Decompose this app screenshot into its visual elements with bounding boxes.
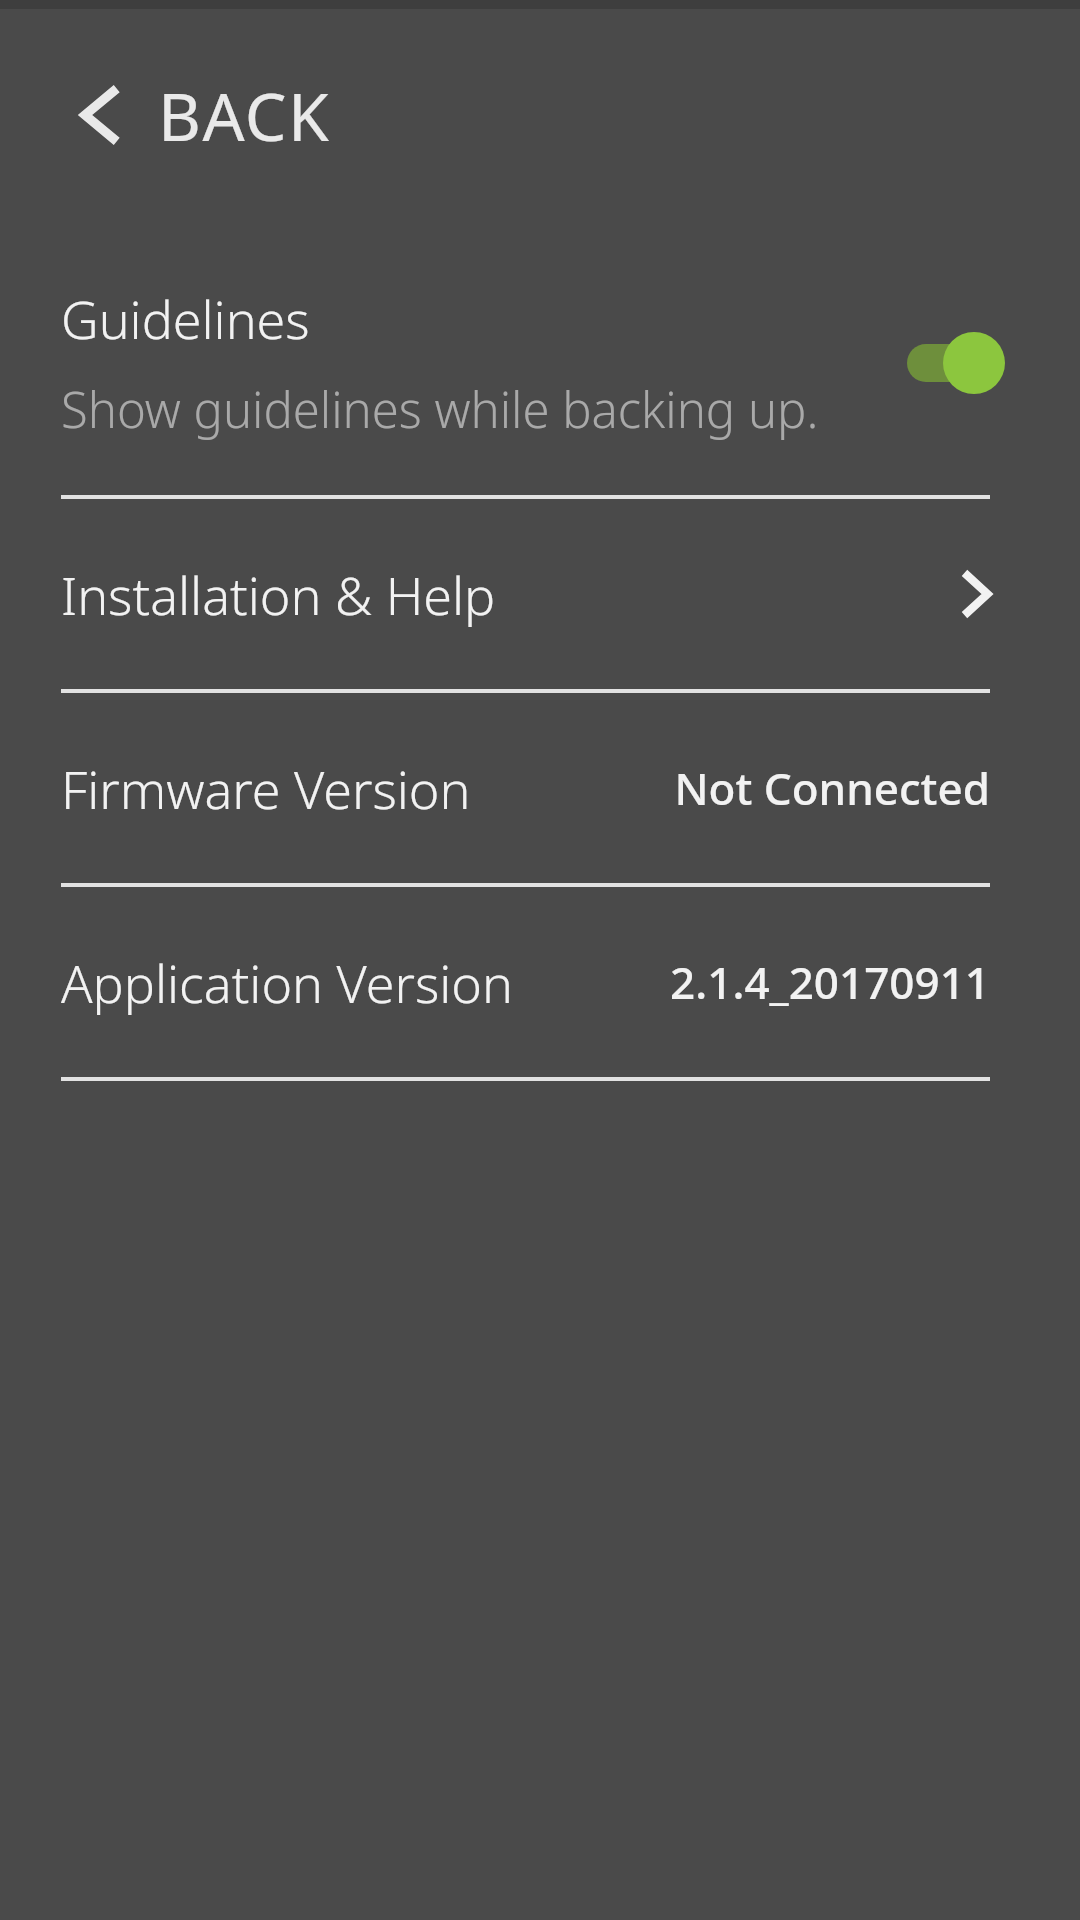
other: Back [78,85,122,145]
staticText: Firmware Version [61,753,658,824]
button[interactable]: Installation & Help [0,499,1080,689]
staticText: Application Version [61,947,654,1018]
button[interactable]: Firmware Version [0,693,1080,883]
button[interactable]: Application Version [0,887,1080,1077]
staticText: Show guidelines while backing up. [61,376,819,443]
button[interactable]: Guidelines [0,230,1080,495]
staticText: BACK [158,70,331,160]
staticText: 2.1.4_20170911 [670,952,990,1012]
button[interactable]: Back [0,0,331,230]
staticText: Installation & Help [61,559,960,630]
staticText: Not Connected [674,758,990,818]
button[interactable]: Guidelines toggle, on [905,332,1005,394]
staticText: Guidelines [61,283,310,354]
other: Open Installation & Help [960,570,992,618]
